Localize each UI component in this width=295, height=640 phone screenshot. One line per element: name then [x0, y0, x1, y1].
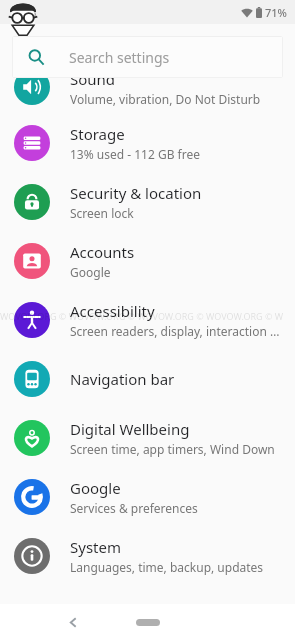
- staticText: Screen readers, display, interaction c…: [70, 323, 283, 339]
- staticText: Navigation bar: [70, 369, 175, 389]
- button[interactable]: Google: [0, 467, 295, 526]
- button[interactable]: Security & location: [0, 172, 295, 231]
- staticText: System: [70, 537, 121, 557]
- staticText: Search settings: [69, 48, 170, 67]
- staticText: Accessibility: [70, 301, 155, 321]
- button[interactable]: Storage: [0, 113, 295, 172]
- staticText: Volume, vibration, Do Not Disturb: [70, 91, 261, 107]
- staticText: Google: [70, 264, 111, 280]
- button[interactable]: Back: [58, 607, 88, 637]
- staticText: WOVOW.ORG © WOVOW.ORG © WOVOW.ORG © WOVO…: [0, 310, 284, 322]
- button[interactable]: System: [0, 526, 295, 585]
- button[interactable]: Digital Wellbeing: [0, 408, 295, 467]
- staticText: Digital Wellbeing: [70, 419, 190, 439]
- staticText: Storage: [70, 124, 125, 144]
- staticText: Screen lock: [70, 205, 134, 221]
- button[interactable]: Sound: [0, 68, 295, 113]
- staticText: Google: [70, 478, 121, 498]
- staticText: Services & preferences: [70, 500, 198, 516]
- button[interactable]: Home: [126, 611, 170, 633]
- staticText: Accounts: [70, 242, 135, 262]
- staticText: 71%: [265, 5, 287, 20]
- button[interactable]: Navigation bar: [0, 349, 295, 408]
- staticText: Sound: [70, 69, 116, 89]
- staticText: Languages, time, backup, updates: [70, 559, 264, 575]
- button[interactable]: Accounts: [0, 231, 295, 290]
- staticText: 3: [30, 5, 37, 20]
- button[interactable]: Search settings: [12, 36, 283, 78]
- button[interactable]: Accessibility: [0, 290, 295, 349]
- staticText: Screen time, app timers, Wind Down: [70, 441, 275, 457]
- staticText: 13% used - 112 GB free: [70, 146, 200, 162]
- staticText: Security & location: [70, 183, 202, 203]
